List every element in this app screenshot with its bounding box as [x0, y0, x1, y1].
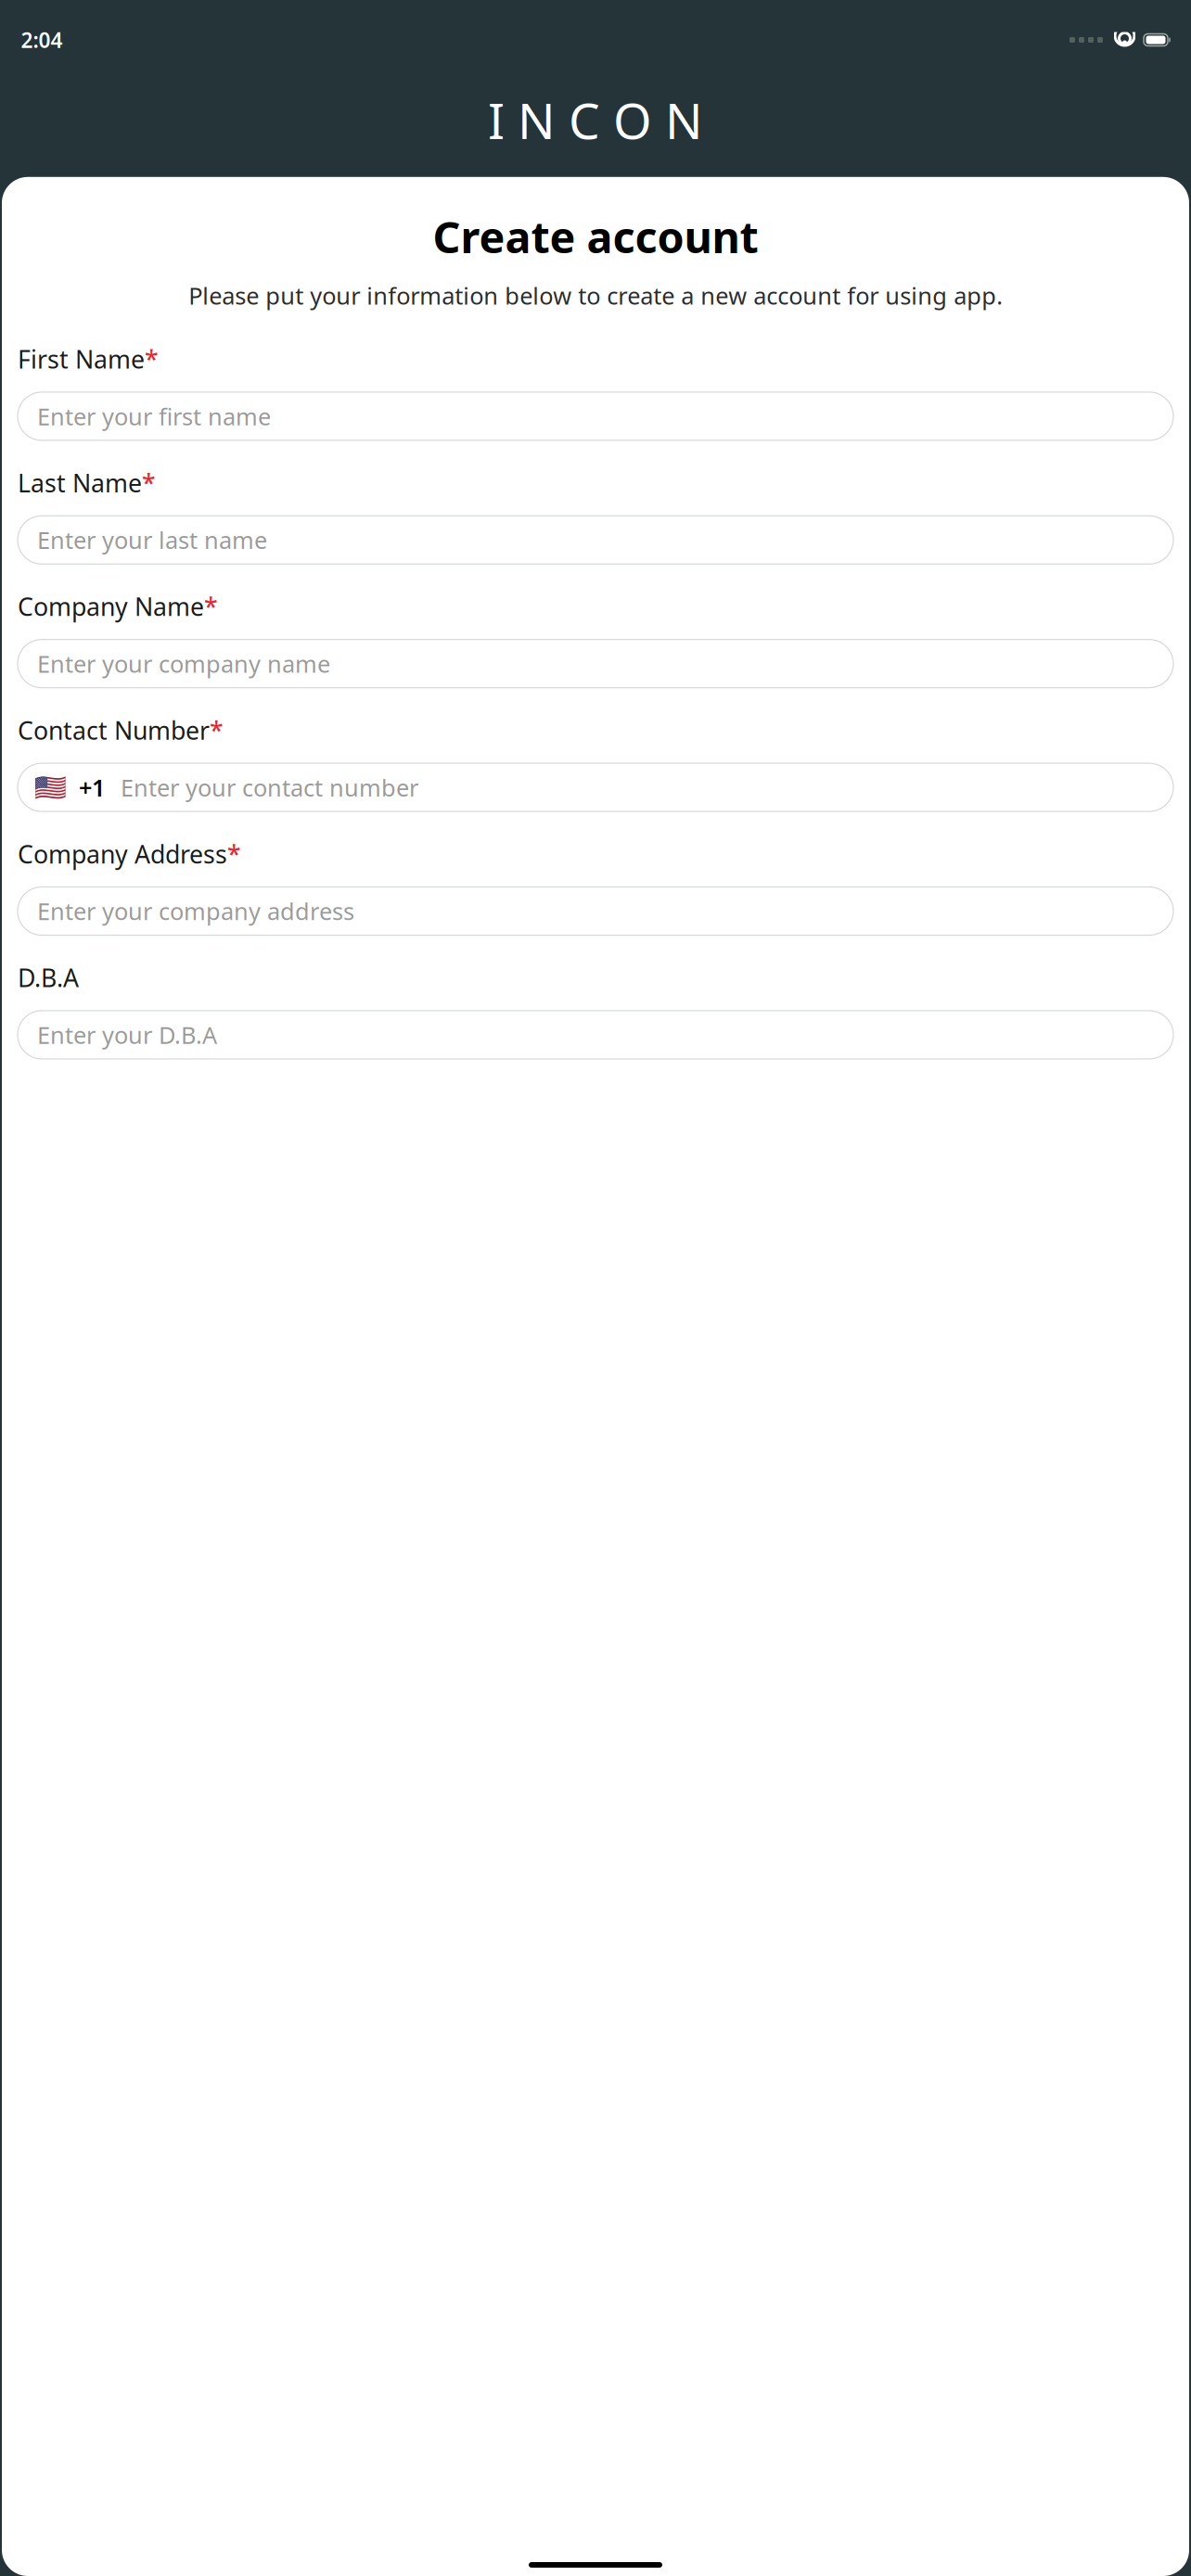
staticText: Company Name [18, 590, 204, 623]
staticText: Enter your last name [37, 524, 267, 555]
staticText: Contact Number [18, 714, 210, 747]
staticText: Create account [433, 208, 758, 265]
staticText: D.B.A [18, 961, 79, 994]
staticText: 2:04 [21, 26, 63, 54]
staticText: Please put your information below to cre… [188, 280, 1003, 311]
staticText: Last Name [18, 466, 142, 499]
staticText: Enter your contact number [121, 772, 418, 803]
staticText: Enter your company name [37, 648, 330, 679]
button[interactable]: 🇺🇸 [18, 763, 1173, 811]
staticText: 🇺🇸 [34, 773, 67, 802]
button[interactable]: Enter your company address [18, 887, 1173, 935]
staticText: I N C O N [488, 87, 703, 153]
button[interactable]: Enter your last name [18, 516, 1173, 564]
staticText: * [227, 837, 241, 870]
staticText: * [142, 466, 156, 499]
staticText: Enter your D.B.A [37, 1019, 217, 1050]
staticText: First Name [18, 343, 145, 375]
staticText: * [210, 714, 224, 747]
staticText: * [204, 590, 218, 623]
staticText: * [145, 343, 159, 375]
staticText: Company Address [18, 837, 227, 870]
staticText: +1 [79, 772, 105, 803]
staticText: Enter your first name [37, 401, 271, 432]
staticText: Enter your company address [37, 895, 354, 927]
button[interactable]: Enter your D.B.A [18, 1011, 1173, 1059]
button[interactable]: Enter your first name [18, 392, 1173, 440]
button[interactable]: Enter your company name [18, 640, 1173, 688]
